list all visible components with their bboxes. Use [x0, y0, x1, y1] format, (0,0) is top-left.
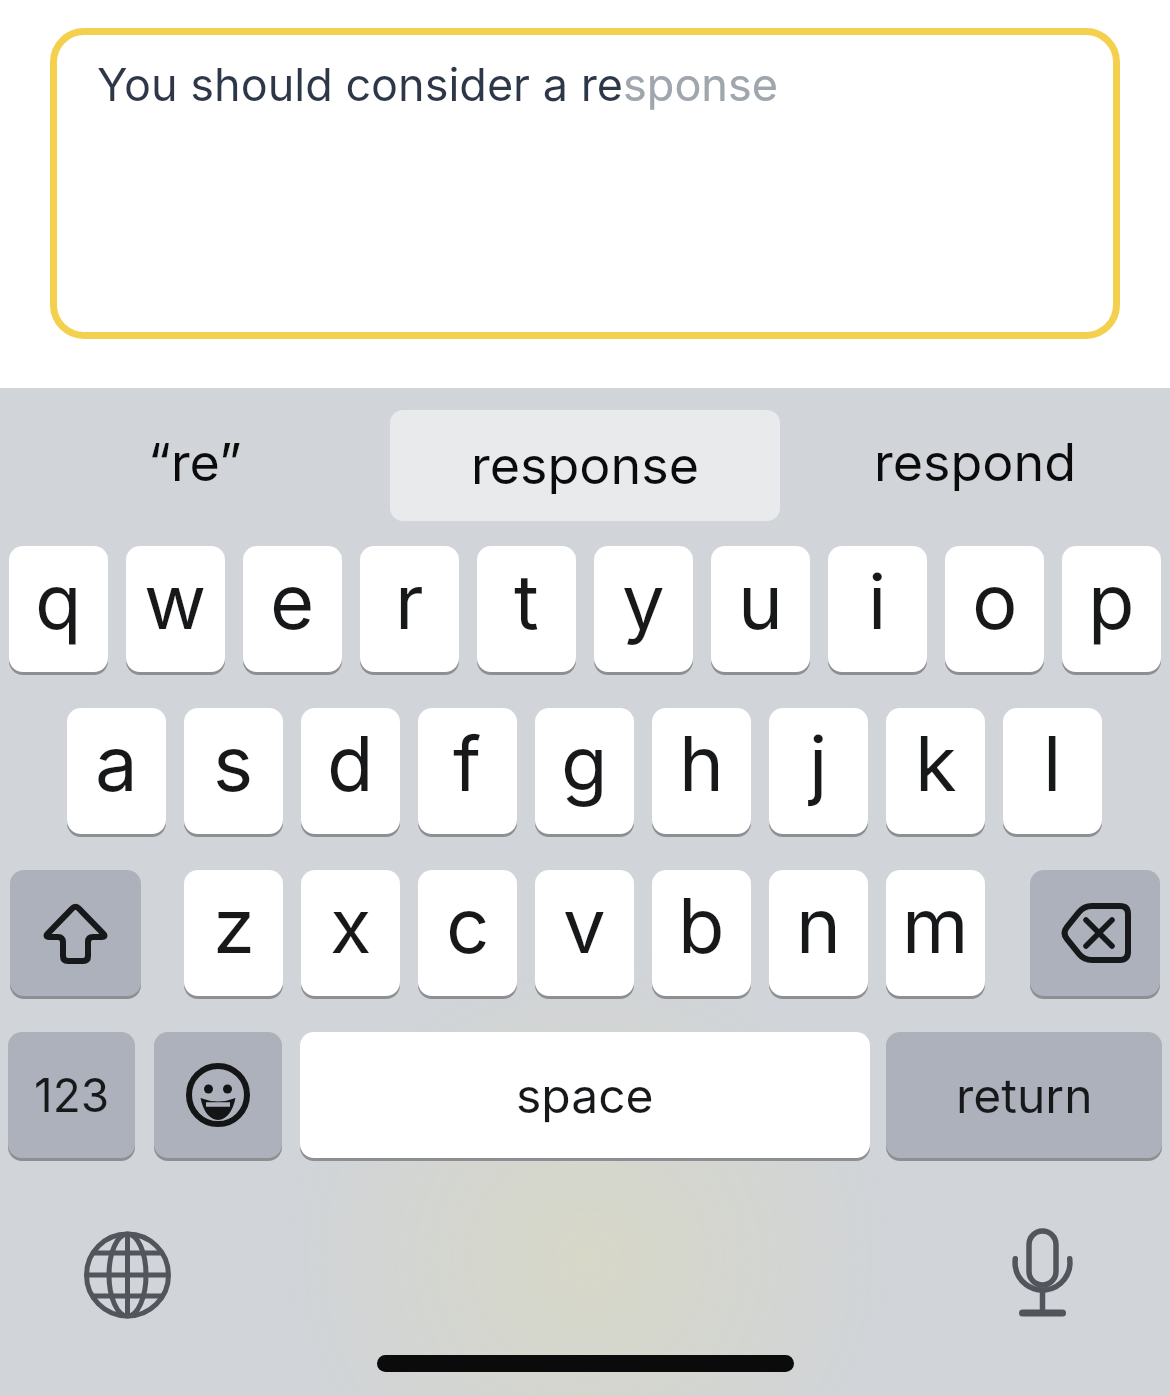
button[interactable]: c: [418, 870, 517, 1000]
staticText: m: [902, 879, 969, 971]
button[interactable]: [1030, 870, 1160, 1000]
button[interactable]: j: [769, 708, 868, 838]
staticText: o: [972, 555, 1018, 647]
button[interactable]: x: [301, 870, 400, 1000]
button[interactable]: [10, 870, 141, 1000]
staticText: 123: [34, 1067, 110, 1123]
button[interactable]: z: [184, 870, 283, 1000]
staticText: y: [622, 555, 665, 647]
staticText: return: [956, 1066, 1093, 1124]
staticText: “re”: [148, 431, 242, 494]
button[interactable]: “re”: [0, 399, 390, 525]
staticText: w: [144, 555, 207, 647]
staticText: You should consider a response: [97, 57, 778, 111]
button[interactable]: g: [535, 708, 634, 838]
staticText: n: [796, 879, 841, 971]
staticText: c: [446, 879, 490, 971]
staticText: l: [1043, 717, 1062, 809]
staticText: h: [679, 717, 724, 809]
button[interactable]: e: [243, 546, 342, 676]
button[interactable]: u: [711, 546, 810, 676]
button[interactable]: r: [360, 546, 459, 676]
button[interactable]: f: [418, 708, 517, 838]
staticText: d: [327, 717, 374, 809]
button[interactable]: [154, 1032, 282, 1162]
button[interactable]: space: [300, 1032, 870, 1162]
staticText: z: [213, 879, 255, 971]
staticText: q: [35, 555, 82, 647]
button[interactable]: v: [535, 870, 634, 1000]
button[interactable]: o: [945, 546, 1044, 676]
staticText: b: [678, 879, 725, 971]
staticText: r: [395, 555, 424, 647]
button[interactable]: [63, 1211, 192, 1340]
button[interactable]: respond: [780, 399, 1170, 525]
button[interactable]: You should consider a response: [50, 28, 1120, 339]
staticText: g: [561, 717, 608, 809]
staticText: i: [868, 555, 887, 647]
button[interactable]: b: [652, 870, 751, 1000]
button[interactable]: 123: [8, 1032, 135, 1162]
staticText: x: [330, 879, 372, 971]
button[interactable]: l: [1003, 708, 1102, 838]
staticText: respond: [874, 431, 1077, 494]
button[interactable]: [980, 1205, 1105, 1330]
staticText: f: [453, 717, 482, 809]
button[interactable]: p: [1062, 546, 1161, 676]
staticText: a: [95, 717, 138, 809]
staticText: s: [213, 717, 254, 809]
button[interactable]: h: [652, 708, 751, 838]
button[interactable]: response: [390, 410, 780, 521]
button[interactable]: n: [769, 870, 868, 1000]
button[interactable]: i: [828, 546, 927, 676]
button[interactable]: m: [886, 870, 985, 1000]
staticText: v: [563, 879, 606, 971]
staticText: e: [270, 555, 315, 647]
button[interactable]: k: [886, 708, 985, 838]
button[interactable]: t: [477, 546, 576, 676]
staticText: response: [471, 434, 699, 497]
button[interactable]: s: [184, 708, 283, 838]
button[interactable]: y: [594, 546, 693, 676]
staticText: k: [915, 717, 957, 809]
button[interactable]: return: [886, 1032, 1162, 1162]
button[interactable]: a: [67, 708, 166, 838]
button[interactable]: w: [126, 546, 225, 676]
staticText: space: [516, 1066, 654, 1124]
button[interactable]: d: [301, 708, 400, 838]
staticText: u: [738, 555, 783, 647]
staticText: j: [809, 717, 828, 809]
button[interactable]: q: [9, 546, 108, 676]
staticText: t: [514, 555, 539, 647]
staticText: p: [1088, 555, 1135, 647]
